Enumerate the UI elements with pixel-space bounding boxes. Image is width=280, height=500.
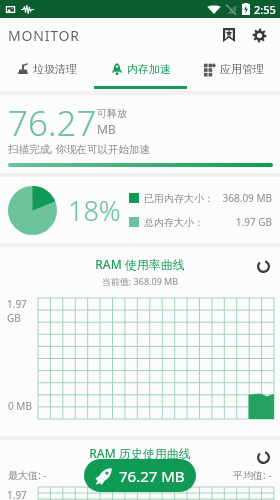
staticText: 总内存大小： [144,216,204,229]
button[interactable]: 垃圾清理 [0,52,94,89]
staticText: 2:55 [254,2,276,17]
staticText: 1.97 [7,297,27,311]
staticText: 应用管理 [220,62,264,76]
button[interactable]: 76.27 MB [84,459,196,492]
staticText: 76.27 MB [119,466,185,486]
staticText: 1.97 [7,488,27,500]
staticText: 0 MB [8,399,32,413]
staticText: GB [7,311,21,325]
staticText: 76.27 [8,99,97,147]
staticText: 垃圾清理 [33,62,77,76]
staticText: 已用内存大小： [144,192,214,205]
button[interactable]: Bookmark [216,22,242,48]
staticText: 扫描完成, 你现在可以开始加速 [8,142,151,156]
button[interactable]: Refresh [254,257,272,275]
staticText: 最大值: - [8,468,47,482]
button[interactable]: Settings [246,22,272,48]
staticText: 当前值: 368.09 MB [0,275,280,287]
staticText: 1.97 GB [214,215,272,229]
staticText: 内存加速 [127,62,171,76]
staticText: RAM 历史使用曲线 [0,445,280,461]
staticText: 平均值: - [233,468,272,482]
button[interactable]: 内存加速 [94,52,187,89]
staticText: 368.09 MB [214,191,272,205]
button[interactable]: 应用管理 [187,52,280,89]
button[interactable]: Refresh history [254,448,272,466]
staticText: MONITOR [8,26,80,45]
staticText: 18% [68,192,121,229]
staticText: MB [97,121,116,137]
staticText: 可释放 [97,107,127,120]
staticText: RAM 使用率曲线 [0,256,280,272]
